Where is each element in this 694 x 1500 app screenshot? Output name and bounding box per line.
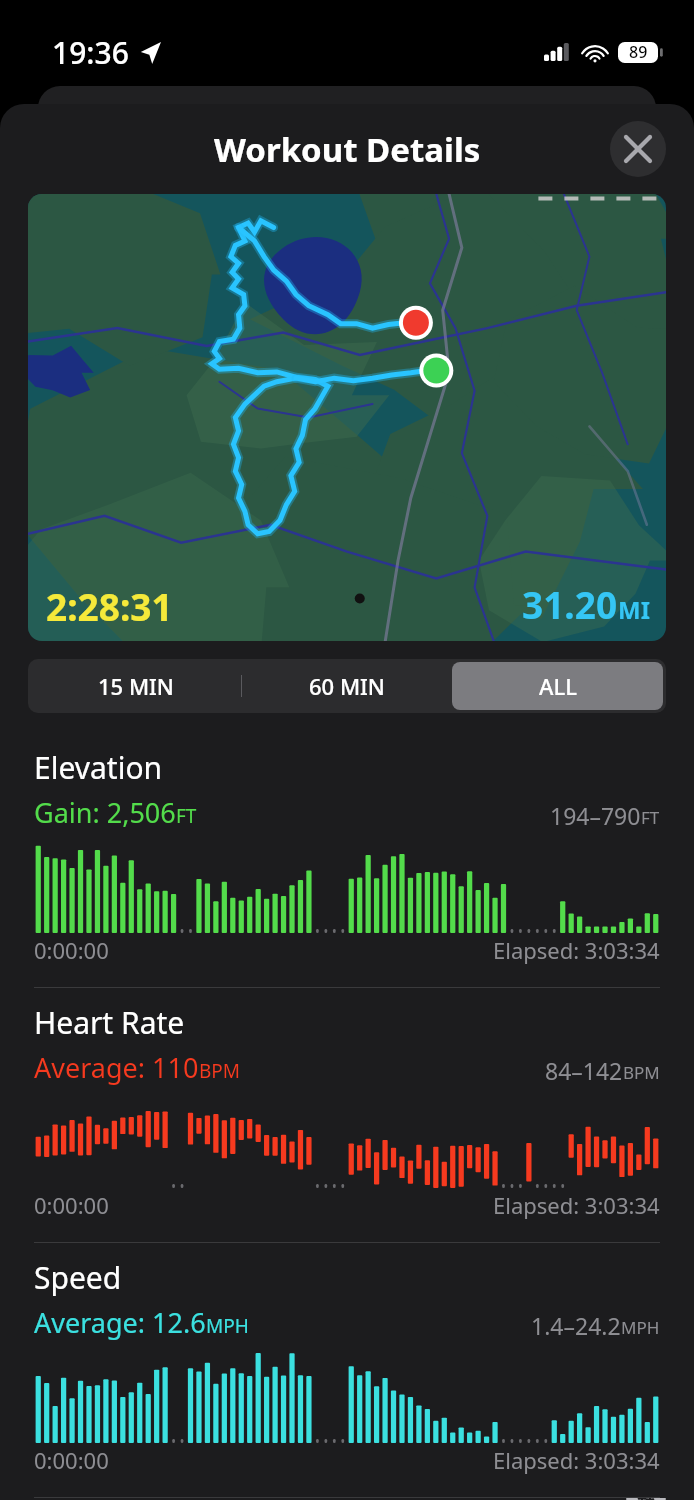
staticText: Average: 12.6: [34, 1304, 206, 1341]
staticText: Elevation: [34, 747, 163, 788]
staticText: Speed: [34, 1257, 122, 1298]
button[interactable]: Elevation: [34, 747, 660, 973]
staticText: 194–790: [550, 800, 641, 831]
staticText: MI: [618, 593, 650, 626]
button[interactable]: 15 MIN: [31, 662, 241, 710]
staticText: Workout Details: [214, 127, 481, 172]
staticText: 31.20: [522, 579, 618, 629]
button[interactable]: Close: [610, 121, 666, 177]
staticText: 19:36: [52, 32, 129, 73]
staticText: Elapsed: 3:03:34: [493, 935, 660, 965]
staticText: BPM: [199, 1058, 241, 1084]
staticText: 84–142: [545, 1055, 623, 1086]
staticText: 0:00:00: [34, 935, 109, 965]
staticText: 0:00:00: [34, 1190, 109, 1220]
button[interactable]: Heart Rate: [34, 1002, 660, 1228]
staticText: Elapsed: 3:03:34: [493, 1445, 660, 1475]
staticText: Heart Rate: [34, 1002, 185, 1043]
staticText: 60 MIN: [309, 671, 385, 701]
staticText: 0:00:00: [34, 1445, 109, 1475]
staticText: 2:28:31: [46, 581, 173, 631]
button[interactable]: Speed: [34, 1257, 660, 1483]
staticText: Average: 110: [34, 1049, 199, 1086]
button[interactable]: Route map: [28, 194, 666, 641]
staticText: FT: [641, 806, 660, 829]
staticText: MPH: [621, 1316, 660, 1339]
staticText: MPH: [206, 1313, 249, 1339]
staticText: BPM: [623, 1061, 660, 1084]
staticText: 15 MIN: [98, 671, 174, 701]
button[interactable]: 60 MIN: [241, 662, 452, 710]
staticText: Gain: 2,506: [34, 794, 176, 831]
staticText: FT: [176, 803, 197, 829]
button[interactable]: Sort: [626, 1498, 666, 1500]
button[interactable]: ALL: [452, 662, 663, 710]
staticText: 1.4–24.2: [531, 1310, 621, 1341]
staticText: 89: [629, 41, 648, 63]
staticText: Elapsed: 3:03:34: [493, 1190, 660, 1220]
staticText: ALL: [539, 671, 577, 701]
